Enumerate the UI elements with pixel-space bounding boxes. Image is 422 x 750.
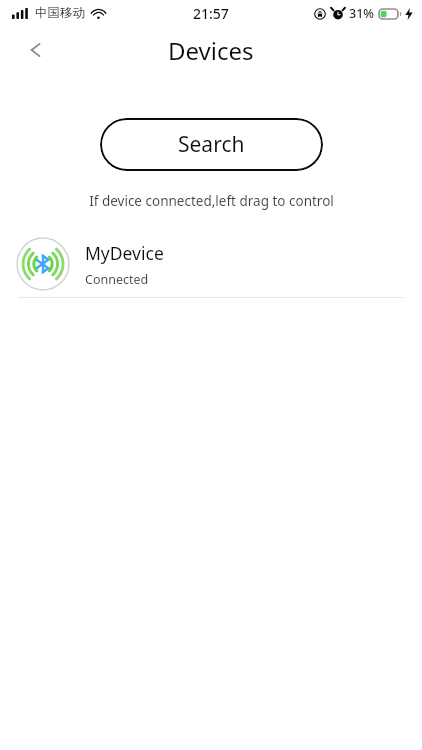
button[interactable]: Back xyxy=(14,28,58,72)
staticText: 31% xyxy=(349,5,374,22)
button[interactable]: MyDevice xyxy=(0,231,422,297)
staticText: MyDevice xyxy=(85,241,164,265)
staticText: 21:57 xyxy=(193,4,229,23)
staticText: 中国移动 xyxy=(35,5,85,21)
staticText: If device connected,left drag to control xyxy=(89,192,334,210)
button[interactable]: Search xyxy=(100,118,323,171)
staticText: Devices xyxy=(168,34,254,67)
staticText: Connected xyxy=(85,271,149,288)
staticText: Search xyxy=(178,130,245,159)
